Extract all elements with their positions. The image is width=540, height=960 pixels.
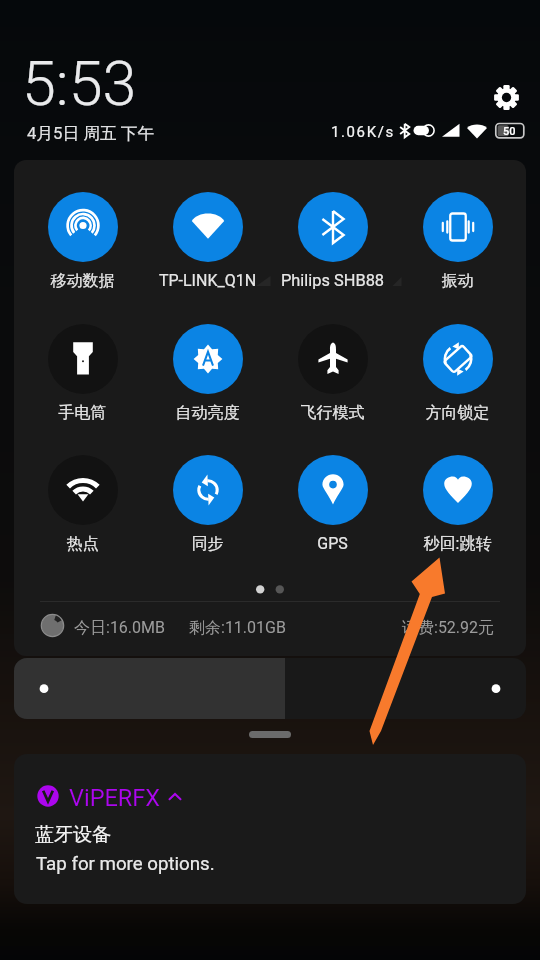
staticText: 5:53 [22, 48, 137, 119]
staticText: 1.06K/s [331, 123, 395, 141]
staticText: 话费:52.92元 [402, 618, 495, 638]
button[interactable]: 移动数据 [20, 192, 145, 296]
staticText: GPS [270, 534, 395, 553]
staticText: 剩余:11.01GB [189, 618, 286, 638]
button[interactable]: 手电筒 [20, 324, 145, 428]
staticText: 振动 [395, 271, 520, 291]
button[interactable]: TP-LINK_Q1N [145, 192, 270, 296]
button[interactable]: GPS [270, 455, 395, 559]
staticText: 蓝牙设备 [35, 823, 111, 847]
staticText: TP-LINK_Q1N [145, 271, 270, 290]
staticText: 移动数据 [20, 271, 145, 291]
button[interactable]: ViPERFX [14, 754, 526, 904]
staticText: 飞行模式 [270, 403, 395, 423]
staticText: Tap for more options. [36, 853, 215, 875]
button[interactable]: 同步 [145, 455, 270, 559]
staticText: 同步 [145, 534, 270, 554]
button[interactable]: 飞行模式 [270, 324, 395, 428]
button[interactable]: Settings [486, 77, 527, 118]
staticText: 50 [503, 125, 516, 138]
button[interactable]: 秒回:跳转 [395, 455, 520, 559]
staticText: 自动亮度 [145, 403, 270, 423]
staticText: 手电筒 [20, 403, 145, 423]
button[interactable]: 振动 [395, 192, 520, 296]
button[interactable]: 热点 [20, 455, 145, 559]
staticText: 热点 [20, 534, 145, 554]
staticText: ViPERFX [69, 784, 161, 812]
staticText: Philips SHB88 [270, 271, 395, 290]
staticText: 今日:16.0MB [74, 618, 166, 638]
button[interactable]: 自动亮度 [145, 324, 270, 428]
staticText: 秒回:跳转 [395, 534, 520, 554]
button[interactable]: Philips SHB88 [270, 192, 395, 296]
staticText: 4月5日 周五 下午 [27, 123, 155, 144]
staticText: 方向锁定 [395, 403, 520, 423]
button[interactable]: 方向锁定 [395, 324, 520, 428]
button[interactable]: Brightness [14, 658, 526, 719]
